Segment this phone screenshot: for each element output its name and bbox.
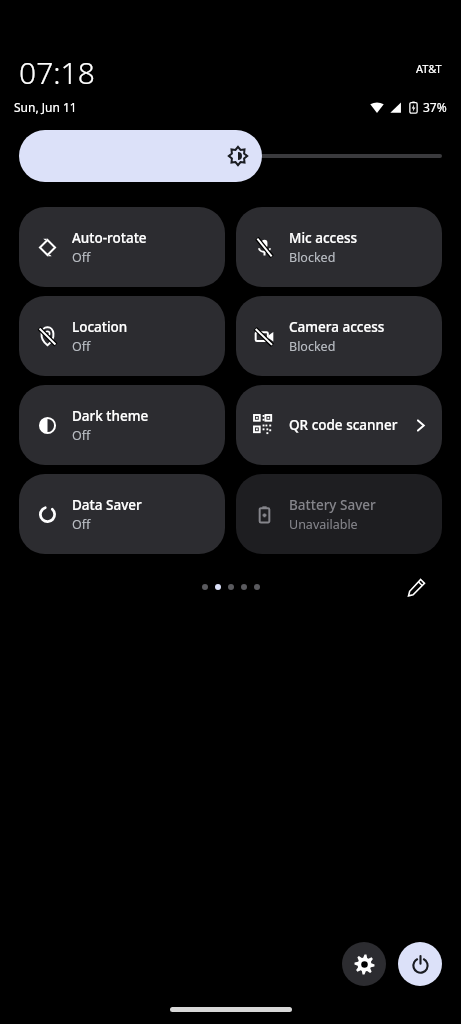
staticText: Sun, Jun 11 — [14, 99, 77, 115]
button[interactable]: QR code scanner — [236, 385, 442, 465]
button[interactable]: Dark theme — [19, 385, 225, 465]
staticText: 07:18 — [19, 52, 95, 93]
staticText: Location — [72, 318, 128, 336]
button[interactable]: Power — [398, 942, 442, 986]
button[interactable]: Edit tiles — [399, 572, 433, 602]
button[interactable]: Brightness — [19, 129, 442, 183]
button[interactable]: Mic access — [236, 207, 442, 287]
staticText: QR code scanner — [289, 416, 398, 434]
staticText: Blocked — [289, 249, 336, 266]
button[interactable]: Settings — [342, 942, 386, 986]
button[interactable]: Location — [19, 296, 225, 376]
button[interactable]: Data Saver — [19, 474, 225, 554]
staticText: Blocked — [289, 338, 336, 355]
button[interactable]: Auto-rotate — [19, 207, 225, 287]
button[interactable]: Camera access — [236, 296, 442, 376]
staticText: Mic access — [289, 229, 358, 247]
staticText: Off — [72, 338, 91, 355]
staticText: AT&T — [416, 61, 442, 76]
button[interactable]: Battery Saver — [236, 474, 442, 554]
staticText: Battery Saver — [289, 496, 376, 514]
staticText: Off — [72, 427, 91, 444]
staticText: Off — [72, 516, 91, 533]
staticText: Data Saver — [72, 496, 142, 514]
staticText: 37% — [423, 99, 447, 115]
staticText: Off — [72, 249, 91, 266]
staticText: Camera access — [289, 318, 385, 336]
staticText: Unavailable — [289, 516, 358, 533]
staticText: Dark theme — [72, 407, 149, 425]
staticText: Auto-rotate — [72, 229, 147, 247]
